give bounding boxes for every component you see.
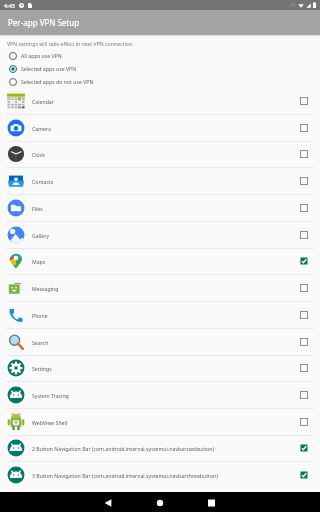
staticText: WebView Shell [32, 419, 300, 426]
button[interactable]: WebView Shell [0, 409, 320, 435]
staticText: Selected apps do not use VPN [21, 78, 94, 85]
staticText: Clock [32, 151, 300, 158]
staticText: Gallery [32, 232, 300, 239]
button[interactable]: Calendar [0, 88, 320, 114]
staticText: All apps use VPN [21, 52, 62, 59]
button[interactable]: Selected apps use VPN [0, 62, 320, 75]
button[interactable]: Selected apps do not use VPN [0, 75, 320, 88]
staticText: Files [32, 205, 300, 212]
staticText: Settings [32, 365, 300, 372]
button[interactable]: Back [99, 496, 118, 510]
button[interactable]: Contacts [0, 168, 320, 194]
staticText: 4:43 [4, 2, 15, 9]
staticText: 4G [290, 2, 296, 8]
button[interactable]: Recents [202, 496, 221, 510]
button[interactable]: Clock [0, 141, 320, 167]
button[interactable]: System Tracing [0, 382, 320, 408]
button[interactable]: 3 Button Navigation Bar (com.android.int… [0, 462, 320, 488]
button[interactable]: Files [0, 195, 320, 221]
button[interactable]: All apps use VPN [0, 49, 320, 62]
button[interactable]: Camera [0, 115, 320, 141]
button[interactable]: Home [150, 496, 170, 510]
staticText: Calendar [32, 98, 300, 105]
staticText: System Tracing [32, 392, 300, 399]
staticText: 3 Button Navigation Bar (com.android.int… [32, 472, 300, 479]
staticText: Per-app VPN Setup [8, 17, 80, 28]
button[interactable]: 2 Button Navigation Bar (com.android.int… [0, 435, 320, 461]
button[interactable]: Phone [0, 302, 320, 328]
staticText: Messaging [32, 285, 300, 292]
staticText: Maps [32, 258, 300, 265]
staticText: Camera [32, 125, 300, 132]
button[interactable]: Maps [0, 248, 320, 274]
button[interactable]: Gallery [0, 222, 320, 248]
staticText: Search [32, 339, 300, 346]
button[interactable]: Settings [0, 355, 320, 381]
staticText: VPN settings will take effect in next VP… [7, 40, 134, 47]
staticText: Phone [32, 312, 300, 319]
staticText: Contacts [32, 178, 300, 185]
staticText: Selected apps use VPN [21, 65, 77, 72]
button[interactable]: Search [0, 329, 320, 355]
button[interactable]: Messaging [0, 275, 320, 301]
staticText: 2 Button Navigation Bar (com.android.int… [32, 445, 300, 452]
